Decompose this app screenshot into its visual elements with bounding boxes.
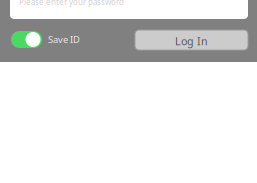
button[interactable]: Log In bbox=[135, 30, 248, 50]
staticText: Please enter your password bbox=[19, 0, 124, 7]
button[interactable]: Save ID bbox=[11, 30, 80, 49]
staticText: Log In bbox=[175, 34, 208, 48]
staticText: Save ID bbox=[48, 33, 80, 46]
button[interactable]: Please enter your password bbox=[10, 0, 248, 19]
